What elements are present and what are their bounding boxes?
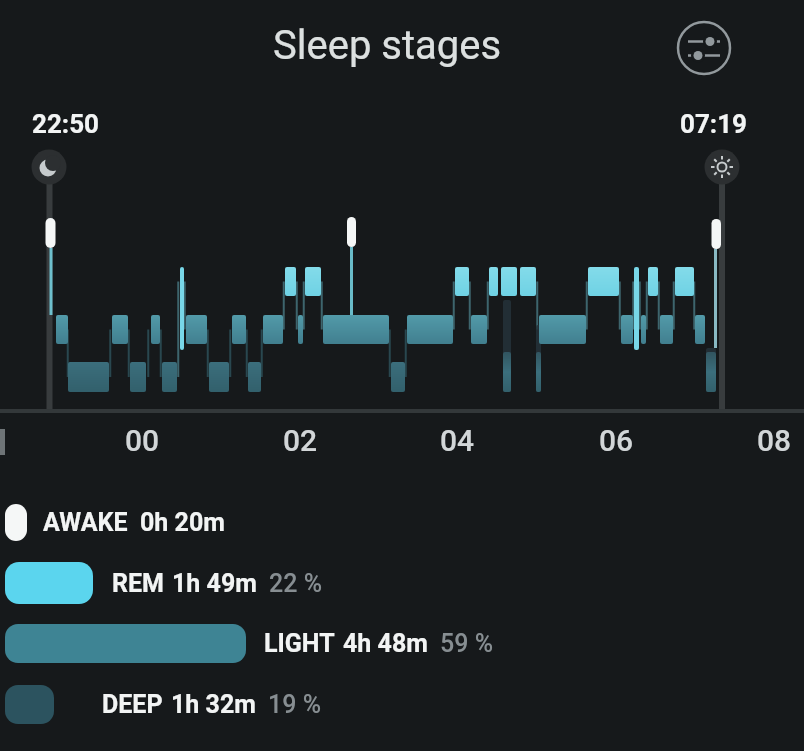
staticText: LIGHT [264, 629, 335, 658]
staticText: 02 [283, 423, 318, 458]
button[interactable]: DEEP [5, 685, 322, 724]
staticText: 07:19 [680, 109, 748, 139]
staticText: 0h 20m [140, 508, 225, 537]
staticText: 04 [440, 423, 475, 458]
staticText: 08 [757, 423, 792, 458]
staticText: 22 % [269, 569, 323, 598]
button[interactable]: REM [5, 562, 323, 604]
staticText: 59 % [440, 629, 494, 658]
button[interactable]: AWAKE [5, 504, 225, 541]
staticText: 22:50 [32, 109, 100, 139]
button[interactable]: LIGHT [5, 624, 494, 663]
staticText: 1h 49m [172, 569, 257, 598]
staticText: Sleep stages [273, 22, 502, 69]
staticText: 06 [599, 423, 634, 458]
staticText: REM [112, 569, 164, 598]
staticText: 4h 48m [343, 629, 428, 658]
staticText: 00 [125, 423, 160, 458]
staticText: AWAKE [43, 508, 128, 537]
staticText: 1h 32m [171, 690, 256, 719]
staticText: 19 % [268, 690, 322, 719]
button[interactable] [674, 18, 734, 78]
staticText: DEEP [102, 690, 163, 719]
